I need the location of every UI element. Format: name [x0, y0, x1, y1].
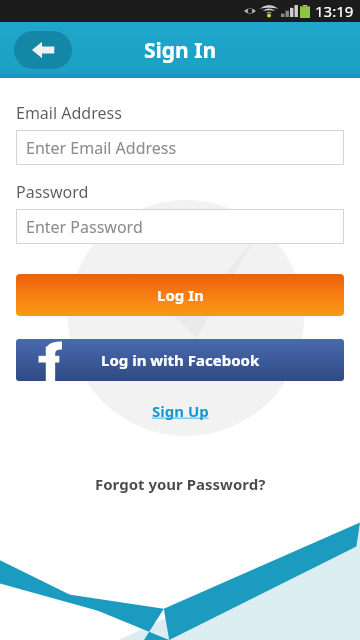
- staticText: Log in with Facebook: [101, 350, 260, 370]
- staticText: Sign Up: [152, 401, 209, 421]
- staticText: Enter Password: [26, 216, 143, 238]
- staticText: Forgot your Password?: [95, 474, 266, 494]
- button[interactable]: Sign Up: [146, 399, 215, 423]
- button[interactable]: Forgot your Password?: [91, 470, 270, 498]
- button[interactable]: Back: [14, 31, 72, 69]
- staticText: Sign In: [144, 36, 217, 65]
- staticText: Enter Email Address: [26, 137, 177, 159]
- staticText: Email Address: [16, 102, 122, 124]
- button[interactable]: Enter Email Address: [16, 130, 344, 165]
- button[interactable]: Log in with Facebook: [16, 339, 344, 381]
- staticText: Log In: [157, 285, 204, 305]
- button[interactable]: Log In: [16, 274, 344, 316]
- staticText: 13:19: [315, 1, 354, 21]
- button[interactable]: Enter Password: [16, 209, 344, 244]
- staticText: Password: [16, 181, 89, 203]
